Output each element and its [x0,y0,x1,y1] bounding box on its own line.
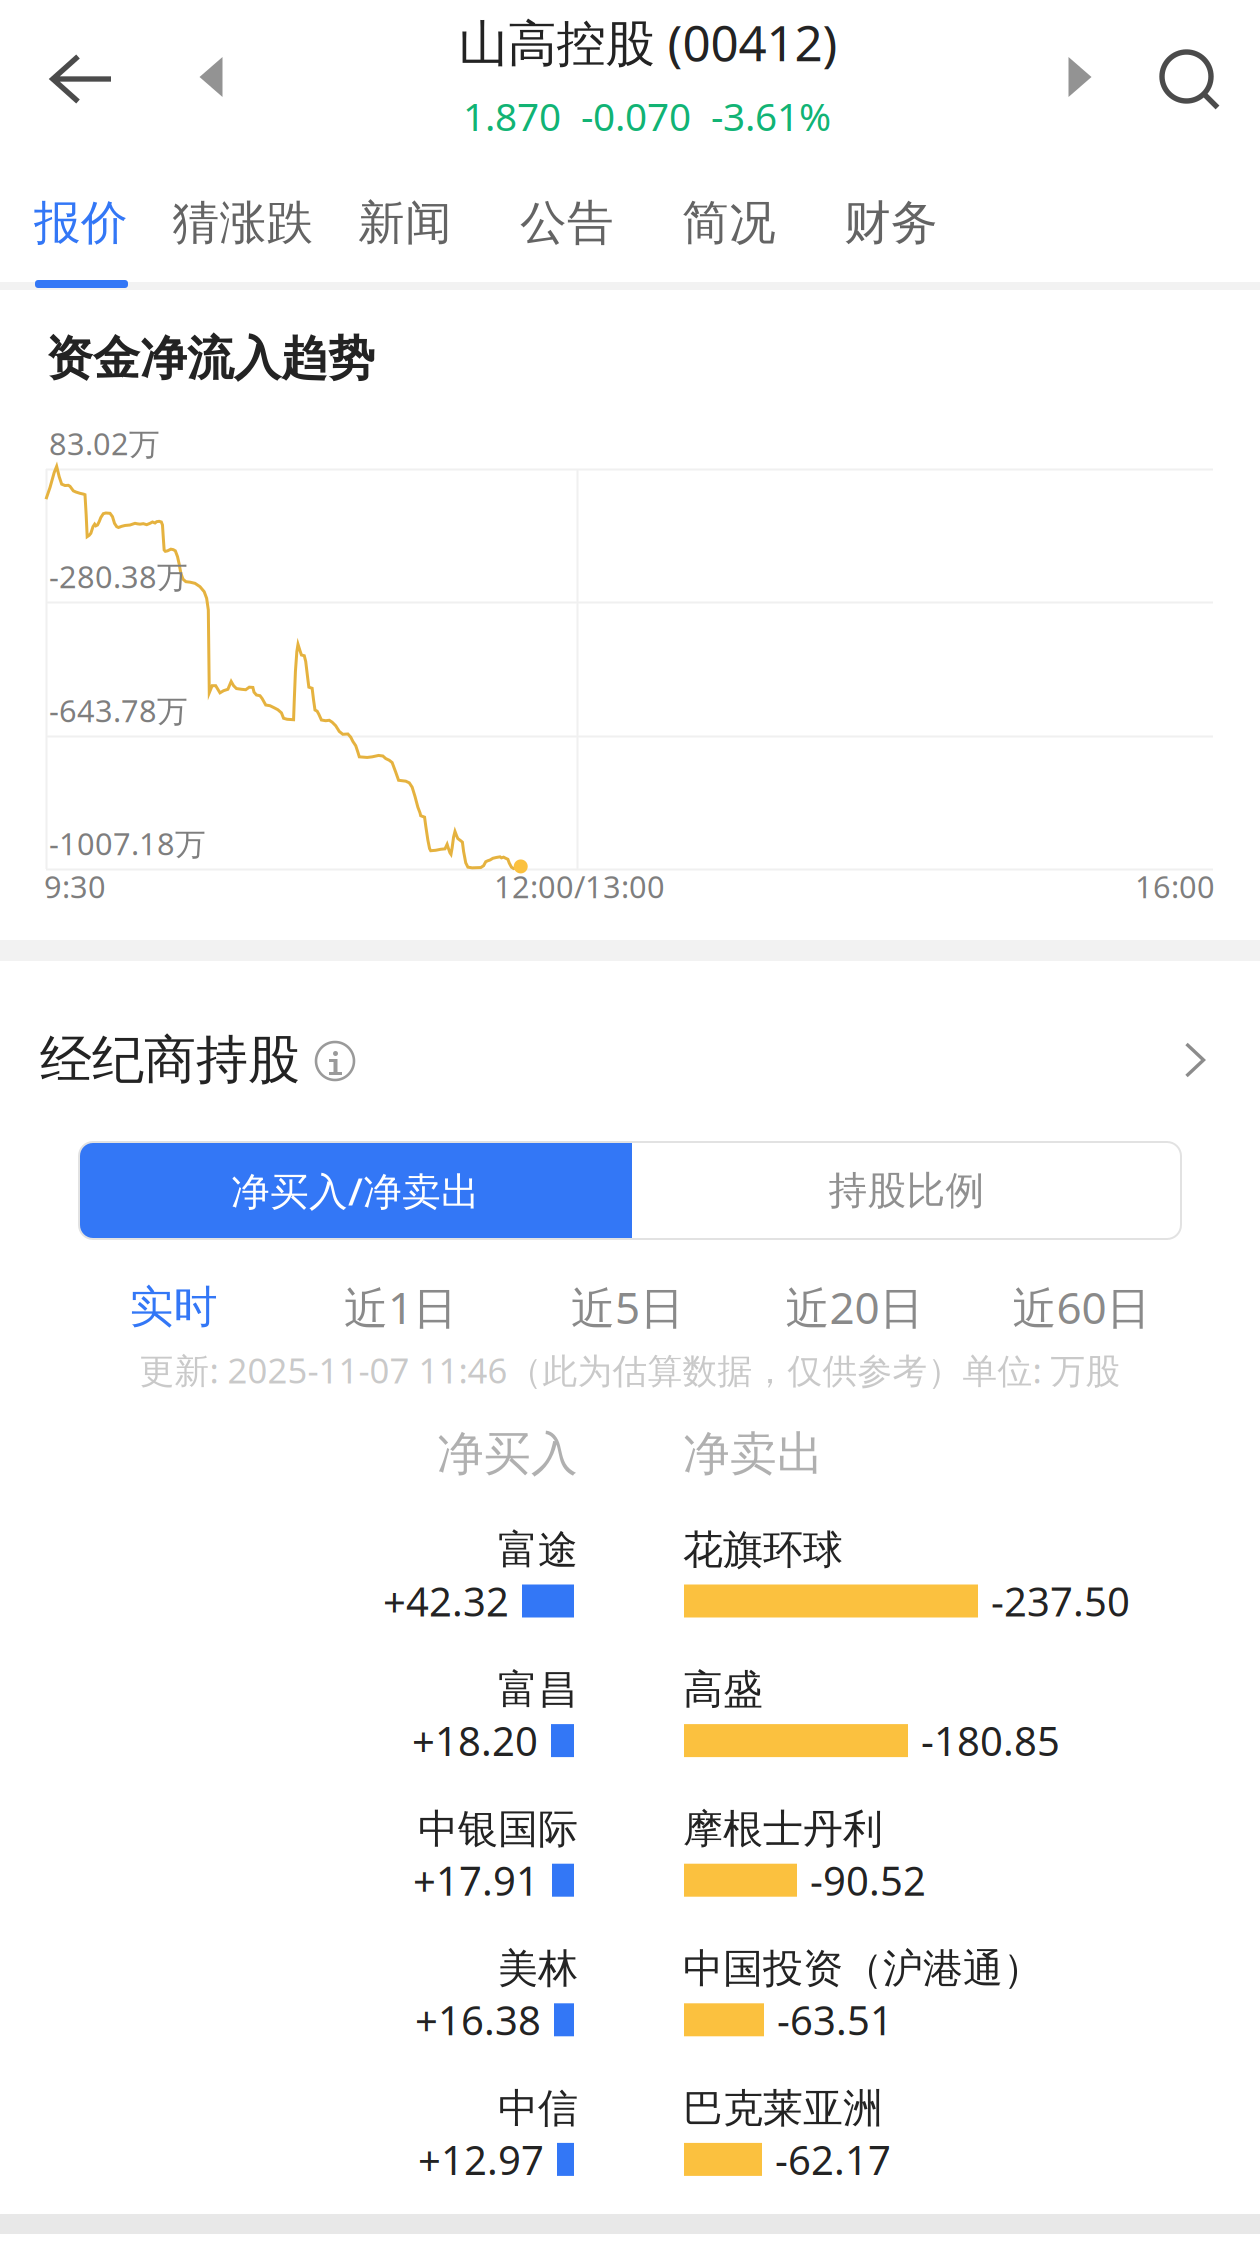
staticText: 12:00/13:00 [494,866,665,907]
button[interactable]: Back [26,24,138,136]
staticText: 中国投资（沪港通） [683,1944,1043,1993]
staticText: 山高控股 (00412) [458,9,837,75]
staticText: +16.38 [415,1993,541,2046]
button[interactable]: 公告 [486,188,648,258]
staticText: 净买入 [437,1425,578,1483]
staticText: +18.20 [412,1714,538,1767]
button[interactable]: 简况 [648,188,810,258]
staticText: +42.32 [383,1574,509,1627]
staticText: 猜涨跌 [172,194,313,252]
staticText: 更新: 2025-11-07 11:46（此为估算数据，仅供参考）单位: 万股 [139,1347,1120,1393]
staticText: 摩根士丹利 [683,1805,883,1854]
staticText: 实时 [129,1280,217,1334]
staticText: 近1日 [344,1278,457,1336]
button[interactable]: 报价 [0,188,162,258]
button[interactable]: 新闻 [324,188,486,258]
staticText: 资金净流入趋势 [46,330,375,387]
staticText: -643.78万 [49,690,188,731]
button[interactable]: 近20日 [741,1277,968,1337]
staticText: -62.17 [775,2133,891,2186]
staticText: 财务 [844,194,938,252]
staticText: 中信 [498,2084,578,2133]
staticText: 富途 [498,1525,578,1574]
staticText: -280.38万 [49,556,188,597]
staticText: +17.91 [413,1854,539,1907]
staticText: 净买入/净卖出 [231,1165,480,1216]
staticText: 近20日 [785,1278,923,1336]
button[interactable]: Next stock [1042,21,1118,133]
staticText: 近60日 [1012,1278,1150,1336]
staticText: -90.52 [810,1854,926,1907]
button[interactable]: 实时 [60,1277,287,1337]
staticText: 近5日 [571,1278,684,1336]
staticText: 简况 [682,194,776,252]
staticText: 经纪商持股 [40,1028,300,1092]
staticText: 9:30 [44,866,106,907]
button[interactable]: 近60日 [968,1277,1195,1337]
button[interactable]: 猜涨跌 [162,188,324,258]
staticText: 1.870 -0.070 -3.61% [463,90,831,142]
button[interactable]: 近5日 [514,1277,741,1337]
staticText: -237.50 [991,1574,1130,1627]
staticText: -180.85 [921,1714,1060,1767]
button[interactable]: 财务 [810,188,972,258]
staticText: 83.02万 [49,423,160,464]
staticText: -63.51 [777,1993,893,2046]
button[interactable]: 经纪商持股 [40,1030,1230,1090]
staticText: 高盛 [683,1665,763,1714]
button[interactable]: 近1日 [287,1277,514,1337]
staticText: 中银国际 [418,1805,578,1854]
button[interactable]: 持股比例 [632,1142,1181,1239]
button[interactable]: 净买入/净卖出 [79,1142,632,1239]
button[interactable]: Previous stock [173,21,249,133]
staticText: +12.97 [418,2133,544,2186]
staticText: 净卖出 [683,1425,824,1483]
staticText: 持股比例 [828,1167,984,1214]
button[interactable]: Search [1134,24,1246,136]
staticText: 花旗环球 [683,1525,843,1574]
staticText: -1007.18万 [49,823,206,864]
staticText: 巴克莱亚洲 [683,2084,883,2133]
staticText: 公告 [520,194,614,252]
staticText: 报价 [34,194,128,252]
staticText: 美林 [498,1944,578,1993]
staticText: 16:00 [1135,866,1215,907]
staticText: 新闻 [358,194,452,252]
staticText: 富昌 [498,1665,578,1714]
